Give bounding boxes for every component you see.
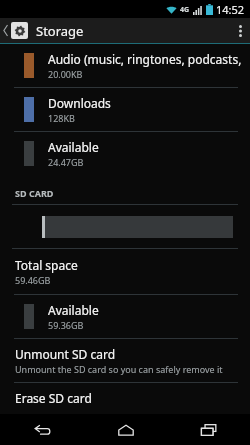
staticText: Unmount SD card bbox=[15, 346, 116, 362]
staticText: Downloads bbox=[48, 95, 111, 111]
button[interactable]: Home bbox=[84, 414, 167, 445]
staticText: Total space bbox=[15, 257, 78, 273]
button[interactable]: Unmount SD card bbox=[0, 339, 250, 382]
button[interactable]: Erase SD card bbox=[0, 383, 250, 414]
button[interactable]: Recent apps bbox=[167, 414, 250, 445]
staticText: SD CARD bbox=[15, 187, 54, 199]
staticText: 128KB bbox=[48, 112, 75, 124]
staticText: Unmount the SD card so you can safely re… bbox=[15, 363, 223, 375]
staticText: 14:52 bbox=[216, 2, 245, 17]
staticText: Storage bbox=[36, 22, 84, 40]
button[interactable]: Navigate up bbox=[0, 22, 30, 39]
button[interactable]: Downloads bbox=[0, 88, 250, 131]
staticText: Erase SD card bbox=[15, 390, 92, 406]
staticText: 59.36GB bbox=[48, 319, 84, 331]
staticText: 59.46GB bbox=[15, 274, 51, 286]
button[interactable]: Total space bbox=[0, 249, 250, 294]
button[interactable]: Back bbox=[0, 414, 84, 445]
button[interactable]: Available bbox=[0, 132, 250, 175]
staticText: Available bbox=[48, 139, 99, 155]
staticText: 4G bbox=[180, 5, 190, 15]
staticText: Available bbox=[48, 302, 99, 318]
staticText: 24.47GB bbox=[48, 156, 84, 168]
button[interactable]: Available bbox=[0, 295, 250, 338]
staticText: Audio (music, ringtones, podcasts, e bbox=[48, 51, 242, 67]
button[interactable]: Audio (music, ringtones, podcasts, e bbox=[0, 44, 250, 87]
button[interactable]: More options bbox=[230, 18, 250, 43]
staticText: 20.00KB bbox=[48, 68, 83, 80]
